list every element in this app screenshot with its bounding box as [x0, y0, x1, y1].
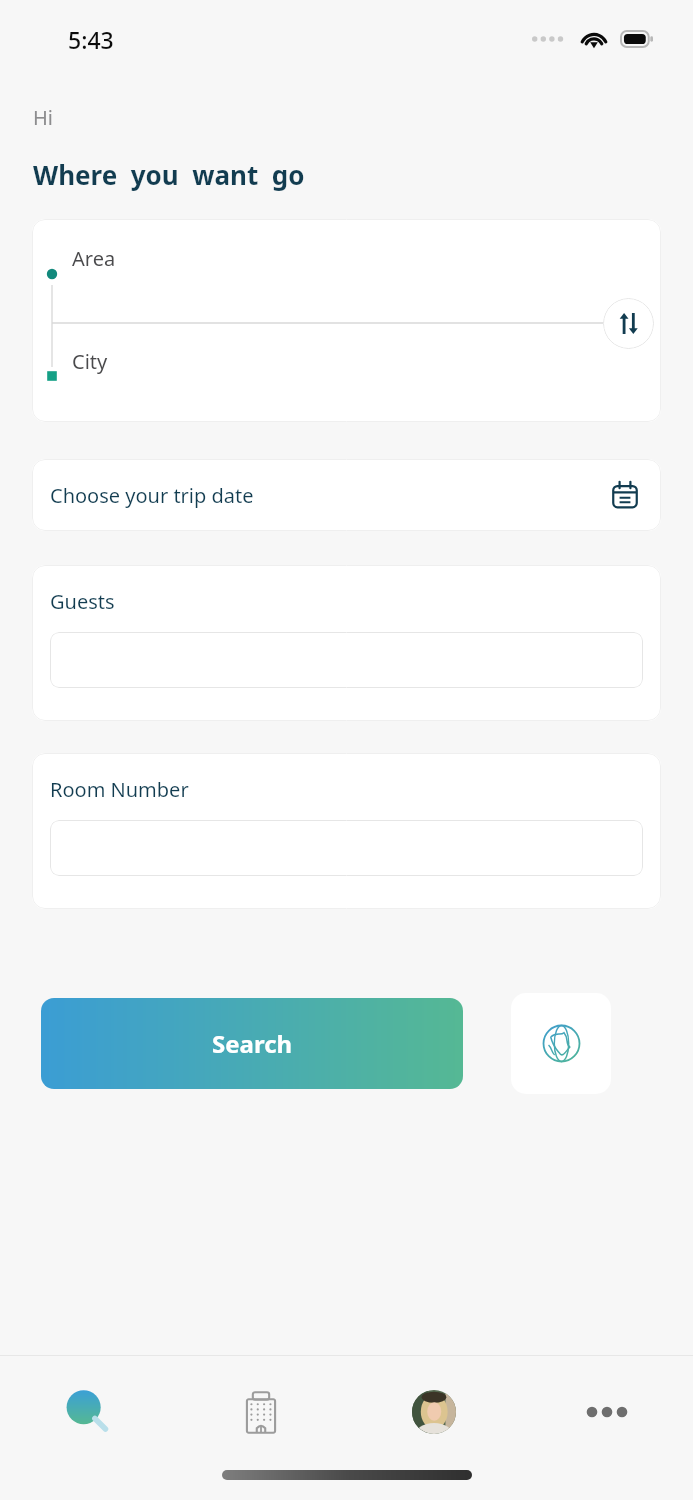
button[interactable]: Hotels	[174, 1356, 347, 1468]
button[interactable]: More	[520, 1356, 693, 1468]
staticText: Hi	[33, 104, 53, 131]
button[interactable]: Explore world	[511, 993, 611, 1094]
staticText: Choose your trip date	[50, 482, 254, 509]
staticText: City	[72, 348, 108, 375]
button[interactable]: Search	[0, 1356, 174, 1468]
staticText: Room Number	[50, 776, 189, 803]
button[interactable]: Search	[41, 998, 463, 1089]
staticText: Area	[72, 245, 116, 272]
button[interactable]: Choose your trip date	[32, 459, 661, 531]
staticText: Where you want go	[33, 157, 305, 192]
button[interactable]: Guests	[32, 565, 661, 721]
staticText: Search	[212, 1027, 293, 1060]
staticText: Guests	[50, 588, 115, 615]
button[interactable]	[32, 219, 661, 422]
staticText: 5:43	[68, 24, 114, 55]
button[interactable]: Room Number	[32, 753, 661, 909]
button[interactable]: Swap area and city	[603, 298, 654, 349]
button[interactable]: Profile	[347, 1356, 520, 1468]
other: Pick date	[609, 479, 641, 511]
